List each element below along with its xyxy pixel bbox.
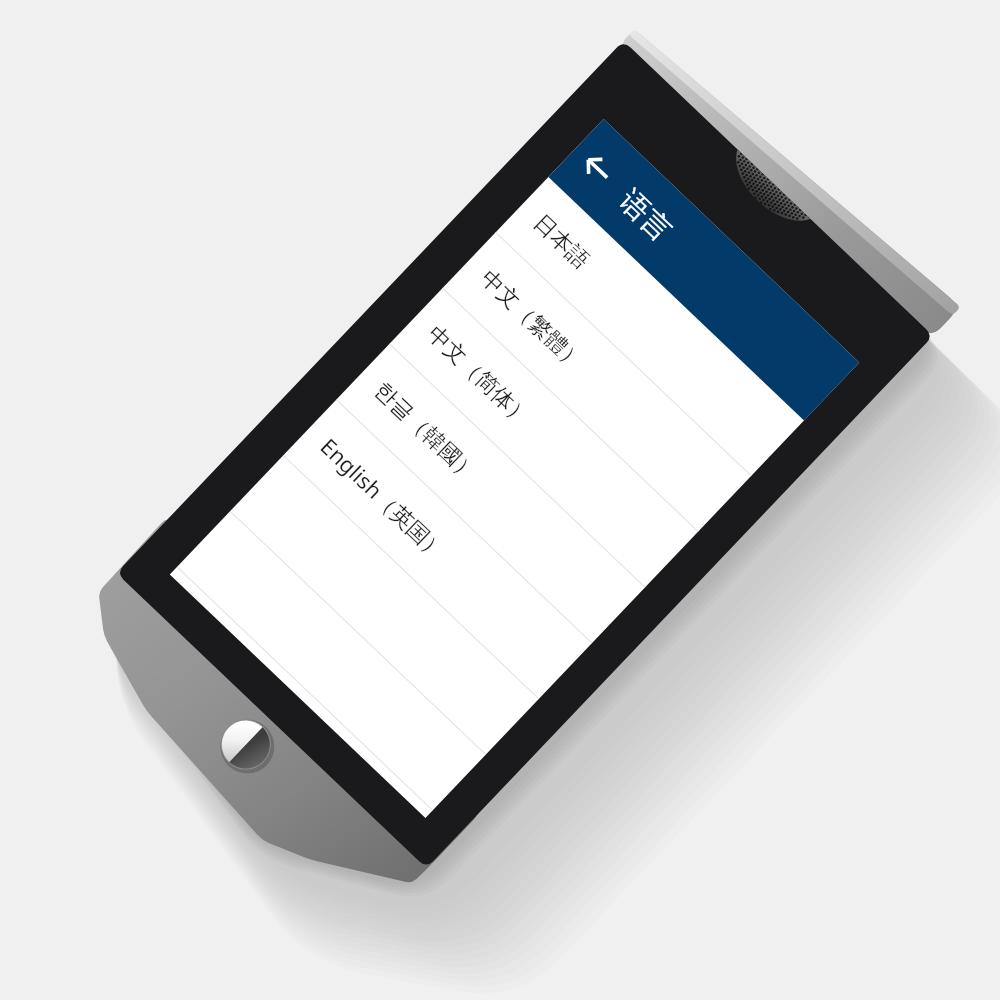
staticText: 中文（简体）: [421, 320, 536, 432]
button[interactable]: 日本語: [496, 177, 804, 475]
staticText: English（英国）: [315, 431, 453, 565]
button[interactable]: 한글（韓國）: [337, 344, 645, 643]
staticText: 语言: [611, 183, 679, 249]
button[interactable]: English（英国）: [284, 400, 592, 698]
button[interactable]: 中文（简体）: [390, 288, 698, 587]
staticText: 中文（繁體）: [475, 265, 589, 376]
button[interactable]: 中文（繁體）: [443, 233, 751, 531]
button[interactable]: Back: [568, 139, 627, 198]
staticText: 한글（韓國）: [368, 376, 483, 487]
staticText: 日本語: [528, 209, 595, 275]
